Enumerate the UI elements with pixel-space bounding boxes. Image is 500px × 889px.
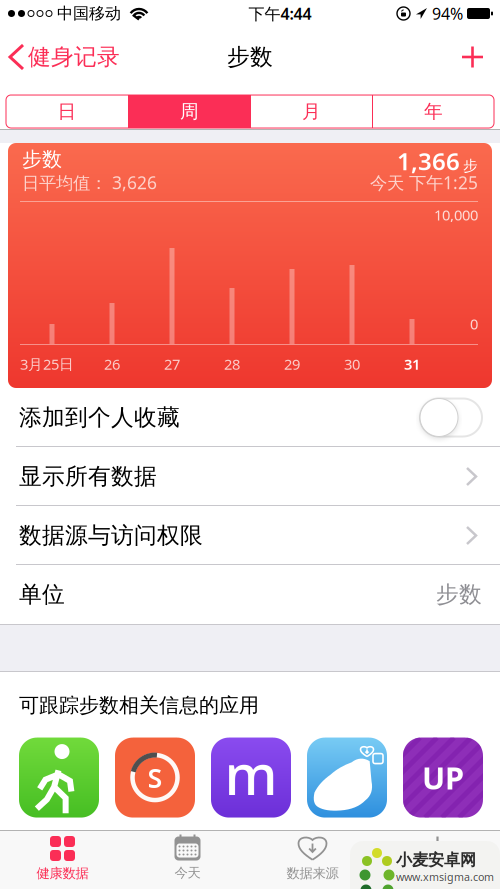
staticText: 显示所有数据	[19, 463, 157, 490]
staticText: UP	[422, 757, 464, 798]
staticText: 26	[104, 354, 120, 374]
staticText: 31	[404, 354, 420, 374]
staticText: 0	[470, 314, 478, 333]
staticText: 单位	[19, 581, 65, 608]
staticText: 健身记录	[28, 43, 120, 71]
staticText: 可跟踪步数相关信息的应用	[19, 693, 259, 718]
staticText: 月	[302, 100, 321, 123]
staticText: 步数	[436, 581, 482, 608]
button[interactable]: 健康数据	[0, 836, 125, 881]
button[interactable]: 健身记录	[0, 43, 120, 71]
button[interactable]: 医疗急救卡	[375, 836, 500, 881]
staticText: S	[147, 760, 162, 795]
button[interactable]: 步行应用	[19, 738, 99, 818]
staticText: 中国移动	[57, 4, 121, 23]
button[interactable]: 年	[373, 95, 494, 128]
staticText: www.xmsigma.com	[396, 870, 494, 884]
staticText: 数据源与访问权限	[19, 522, 203, 549]
staticText: 数据来源	[286, 865, 338, 881]
staticText: 日平均值： 3,626	[22, 171, 157, 194]
staticText: 今天 下午1:25	[370, 171, 478, 194]
button[interactable]: 单位	[0, 565, 500, 624]
staticText: 3月25日	[20, 354, 74, 374]
button[interactable]: 数据来源	[250, 836, 375, 881]
staticText: 1,366	[397, 145, 460, 177]
button[interactable]: 数据源与访问权限	[0, 506, 500, 565]
button[interactable]: 月	[251, 95, 372, 128]
button[interactable]: 周	[129, 95, 250, 128]
button[interactable]: 计步器	[307, 738, 387, 818]
staticText: 94%	[432, 3, 463, 24]
staticText: 年	[424, 100, 443, 123]
staticText: 10,000	[434, 205, 478, 224]
staticText: 30	[344, 354, 360, 374]
staticText: 下午4:44	[248, 3, 311, 24]
button[interactable]: Misfit	[211, 738, 291, 818]
staticText: 27	[164, 354, 180, 374]
button[interactable]: 日	[6, 95, 128, 128]
staticText: 小麦安卓网	[396, 850, 476, 870]
staticText: 今天	[174, 864, 200, 881]
staticText: 28	[224, 354, 240, 374]
staticText: 健康数据	[36, 865, 88, 881]
button[interactable]: UP	[403, 738, 483, 818]
staticText: 步	[463, 157, 478, 175]
staticText: 步数	[227, 43, 273, 71]
staticText: 周	[180, 100, 199, 123]
button[interactable]: 添加到个人收藏	[0, 388, 500, 447]
staticText: 步数	[22, 147, 62, 172]
staticText: 日	[57, 100, 76, 123]
button[interactable]: 显示所有数据	[0, 447, 500, 506]
staticText: 29	[284, 354, 300, 374]
staticText: 医疗急救卡	[405, 864, 470, 881]
staticText: 添加到个人收藏	[19, 404, 180, 431]
button[interactable]: 今天	[125, 836, 250, 881]
staticText: m	[224, 736, 277, 811]
button[interactable]: 添加数据点	[462, 46, 500, 67]
button[interactable]: Stepz	[115, 738, 195, 818]
